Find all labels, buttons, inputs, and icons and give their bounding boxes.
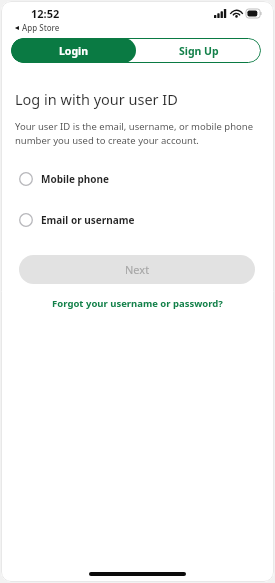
staticText: Mobile phone xyxy=(41,172,110,186)
button[interactable]: Login xyxy=(11,38,136,63)
button[interactable]: Email or username xyxy=(1,210,274,230)
staticText: Your user ID is the email, username, or … xyxy=(15,120,258,147)
staticText: Forgot your username or password? xyxy=(52,297,223,310)
staticText: 12:52 xyxy=(31,6,60,21)
staticText: Sign Up xyxy=(179,44,219,58)
button[interactable]: Forgot your username or password? xyxy=(1,297,274,310)
button[interactable]: Next xyxy=(19,255,255,284)
staticText: Log in with your user ID xyxy=(15,89,178,109)
button[interactable]: Sign Up xyxy=(136,38,261,63)
staticText: Next xyxy=(125,262,150,277)
button[interactable]: Mobile phone xyxy=(1,169,274,189)
staticText: Email or username xyxy=(41,213,135,227)
staticText: App Store xyxy=(22,22,60,33)
staticText: Login xyxy=(59,44,89,58)
